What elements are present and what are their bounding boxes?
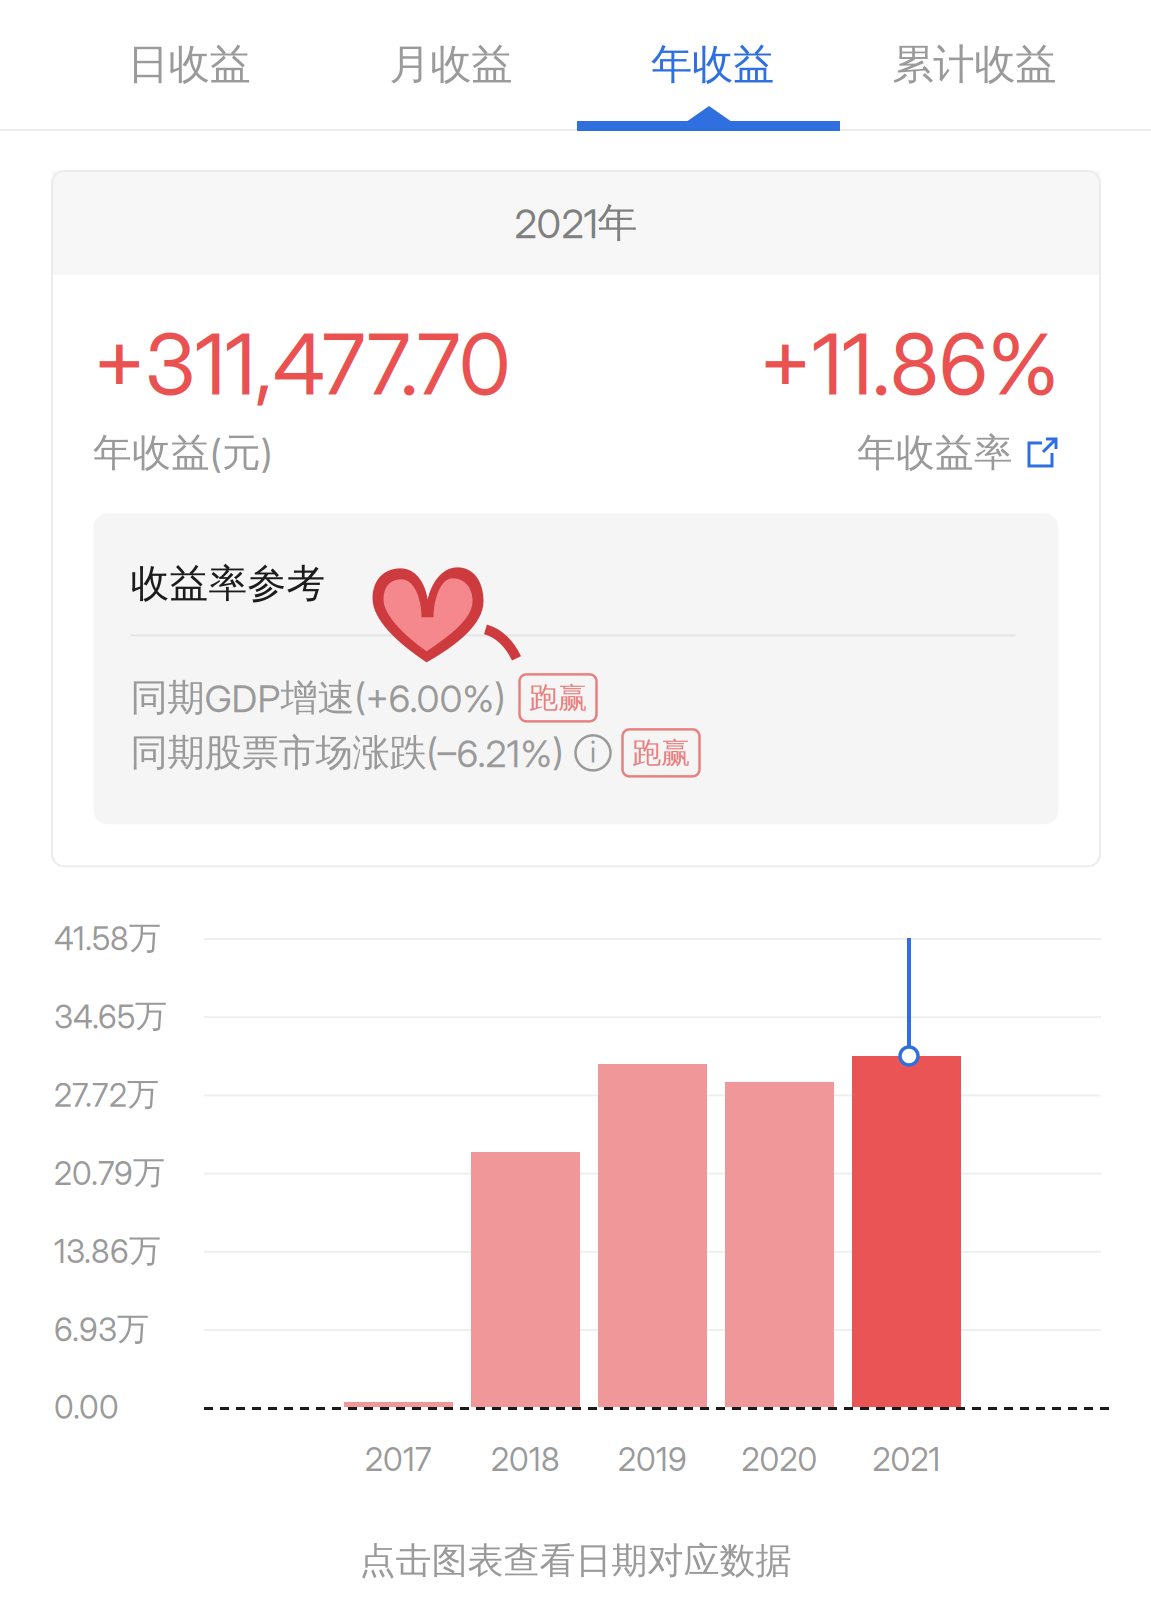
staticText: 2020 (741, 1440, 817, 1479)
staticText: 年收益 (651, 38, 774, 91)
button[interactable]: 月收益 (320, 0, 582, 129)
staticText: 2021 (872, 1440, 940, 1479)
staticText: 2017 (365, 1440, 432, 1479)
staticText: 2021年 (514, 198, 637, 248)
staticText: 34.65万 (54, 996, 167, 1036)
staticText: 同期股票市场涨跌(–6.21%) (130, 729, 563, 776)
staticText: 2019 (618, 1440, 687, 1479)
button[interactable]: 跑赢 (622, 729, 699, 776)
staticText: 跑赢 (632, 734, 690, 771)
staticText: 日收益 (127, 38, 250, 91)
staticText: +311,477.70 (93, 313, 511, 415)
staticText: 27.72万 (54, 1074, 159, 1114)
button[interactable]: 累计收益 (843, 0, 1105, 129)
staticText: i (590, 734, 596, 770)
staticText: 同期GDP增速(+6.00%) (130, 674, 505, 721)
staticText: 跑赢 (529, 679, 587, 716)
staticText: 点击图表查看日期对应数据 (359, 1538, 791, 1583)
staticText: 41.58万 (54, 918, 161, 958)
button[interactable]: 跑赢 (519, 674, 596, 721)
staticText: 6.93万 (54, 1309, 149, 1349)
staticText: 年收益(元) (93, 429, 273, 477)
staticText: +11.86% (759, 313, 1059, 415)
staticText: 13.86万 (54, 1231, 161, 1271)
staticText: 2018 (491, 1440, 560, 1479)
staticText: 0.00 (54, 1388, 119, 1426)
staticText: 年收益率 (857, 429, 1013, 477)
staticText: 累计收益 (892, 38, 1056, 91)
button[interactable]: 日收益 (58, 0, 320, 129)
button[interactable]: More info (575, 735, 610, 770)
staticText: 20.79万 (54, 1152, 165, 1193)
button[interactable]: 年收益率 (857, 429, 1059, 477)
staticText: 收益率参考 (130, 559, 325, 608)
staticText: 月收益 (389, 38, 512, 91)
button[interactable]: 年收益 (581, 0, 843, 129)
